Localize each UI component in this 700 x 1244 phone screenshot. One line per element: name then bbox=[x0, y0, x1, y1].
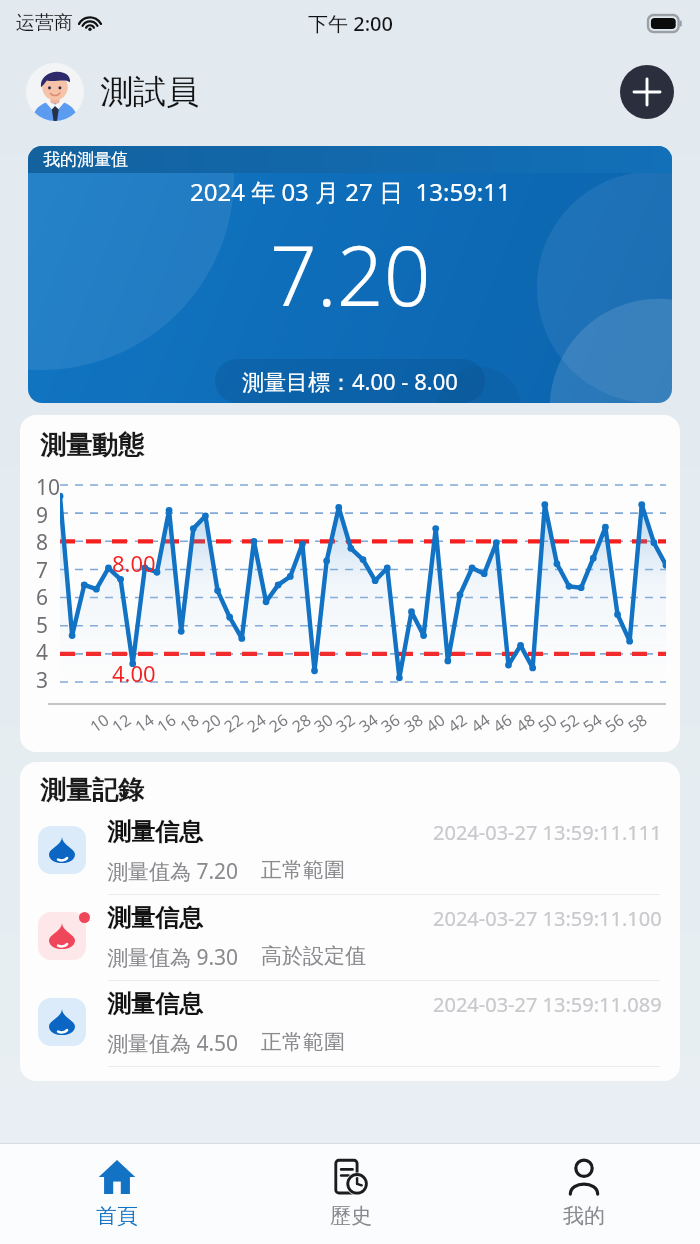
staticText: 38 bbox=[399, 708, 428, 737]
staticText: 34 bbox=[354, 708, 383, 737]
staticText: 正常範圍 bbox=[261, 857, 345, 883]
button[interactable]: 我的 bbox=[467, 1144, 700, 1244]
staticText: 5 bbox=[36, 611, 49, 640]
staticText: 48 bbox=[511, 708, 540, 737]
staticText: 36 bbox=[376, 708, 405, 737]
staticText: 46 bbox=[488, 708, 517, 737]
staticText: 14 bbox=[130, 708, 159, 737]
button[interactable]: 測量信息 bbox=[20, 981, 680, 1067]
staticText: 2024 年 03 月 27 日 13:59:11 bbox=[190, 175, 511, 208]
staticText: 10 bbox=[36, 473, 61, 502]
button[interactable]: Add measurement bbox=[620, 65, 674, 119]
staticText: 24 bbox=[242, 708, 271, 737]
button[interactable]: 測量信息 bbox=[20, 809, 680, 895]
staticText: 7 bbox=[36, 556, 49, 585]
staticText: 12 bbox=[107, 708, 136, 737]
button[interactable]: 測量信息 bbox=[20, 895, 680, 981]
button[interactable]: Profile avatar bbox=[26, 63, 84, 121]
staticText: 測量信息 bbox=[107, 903, 203, 933]
staticText: 測試員 bbox=[100, 71, 199, 113]
staticText: 16 bbox=[152, 708, 181, 737]
staticText: 高於設定值 bbox=[261, 943, 366, 969]
staticText: 运营商 bbox=[16, 11, 73, 35]
staticText: 32 bbox=[331, 708, 360, 737]
staticText: 4.00 bbox=[112, 658, 156, 688]
staticText: 測量信息 bbox=[107, 989, 203, 1019]
button[interactable]: 我的測量值 bbox=[28, 146, 672, 403]
staticText: 56 bbox=[600, 708, 629, 737]
staticText: 44 bbox=[466, 708, 495, 737]
button[interactable]: 首頁 bbox=[0, 1144, 234, 1244]
staticText: 6 bbox=[36, 583, 49, 612]
staticText: 40 bbox=[421, 708, 450, 737]
staticText: 測量值為 9.30 bbox=[107, 943, 239, 972]
staticText: 20 bbox=[197, 708, 226, 737]
staticText: 52 bbox=[555, 708, 584, 737]
staticText: 測量信息 bbox=[107, 817, 203, 847]
staticText: 測量目標：4.00 - 8.00 bbox=[242, 366, 458, 396]
staticText: 歷史 bbox=[330, 1203, 372, 1229]
staticText: 9 bbox=[36, 501, 49, 530]
staticText: 26 bbox=[264, 708, 293, 737]
staticText: 測量動態 bbox=[40, 429, 144, 462]
staticText: 2024-03-27 13:59:11.089 bbox=[433, 991, 662, 1018]
staticText: 8.00 bbox=[112, 548, 156, 578]
staticText: 54 bbox=[578, 708, 607, 737]
staticText: 58 bbox=[623, 708, 652, 737]
staticText: 7.20 bbox=[270, 218, 431, 330]
staticText: 2024-03-27 13:59:11.111 bbox=[433, 819, 662, 846]
staticText: 首頁 bbox=[96, 1203, 138, 1229]
staticText: 3 bbox=[36, 666, 49, 695]
staticText: 測量值為 4.50 bbox=[107, 1029, 239, 1058]
staticText: 我的 bbox=[563, 1203, 605, 1229]
staticText: 28 bbox=[287, 708, 316, 737]
staticText: 下午 2:00 bbox=[308, 10, 393, 37]
staticText: 18 bbox=[175, 708, 204, 737]
staticText: 2024-03-27 13:59:11.100 bbox=[433, 905, 662, 932]
staticText: 測量記錄 bbox=[40, 774, 144, 807]
staticText: 8 bbox=[36, 528, 49, 557]
staticText: 4 bbox=[36, 638, 49, 667]
staticText: 22 bbox=[219, 708, 248, 737]
staticText: 正常範圍 bbox=[261, 1029, 345, 1055]
staticText: 10 bbox=[85, 708, 114, 737]
button[interactable]: 歷史 bbox=[234, 1144, 467, 1244]
staticText: 我的測量值 bbox=[43, 149, 128, 170]
staticText: 42 bbox=[443, 708, 472, 737]
staticText: 測量值為 7.20 bbox=[107, 857, 239, 886]
staticText: 50 bbox=[533, 708, 562, 737]
staticText: 30 bbox=[309, 708, 338, 737]
